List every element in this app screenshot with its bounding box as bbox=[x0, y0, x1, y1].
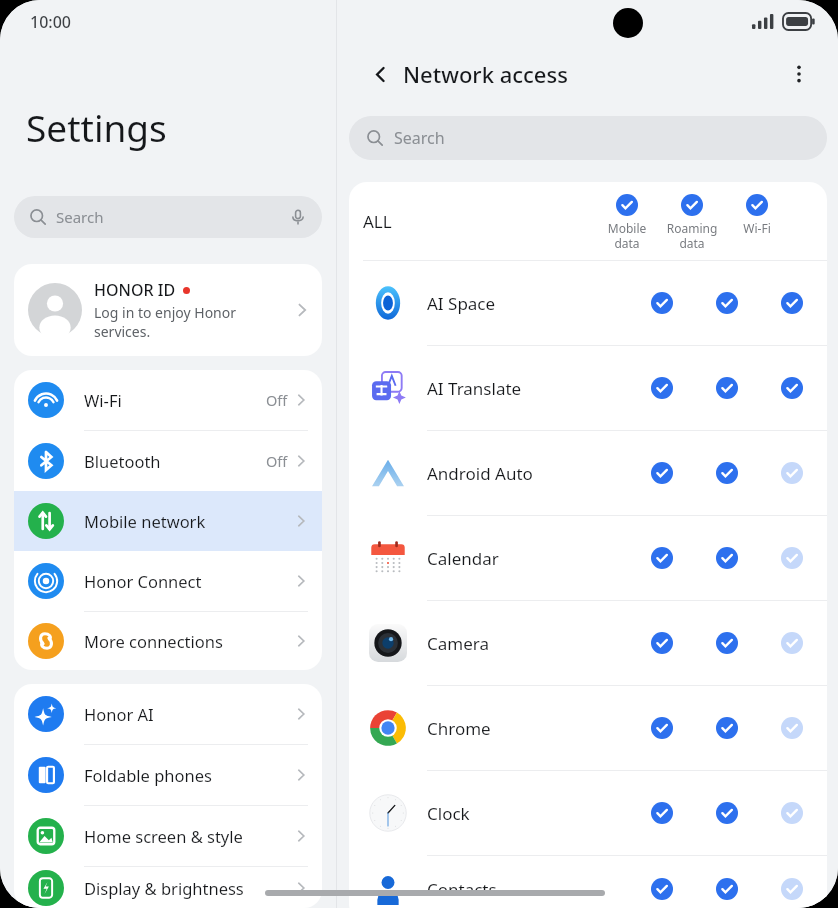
staticText: Settings bbox=[26, 102, 167, 152]
button[interactable]: Enabled bbox=[716, 292, 738, 314]
button[interactable]: Wi-Fi bbox=[746, 194, 768, 216]
button[interactable]: Enabled bbox=[651, 292, 673, 314]
button[interactable]: Calendar bbox=[349, 516, 827, 600]
staticText: HONOR ID bbox=[94, 279, 176, 301]
button[interactable]: Disabled bbox=[781, 878, 803, 900]
button[interactable]: Enabled bbox=[651, 717, 673, 739]
button[interactable]: Enabled bbox=[651, 377, 673, 399]
staticText: AI Space bbox=[427, 292, 496, 315]
staticText: More connections bbox=[84, 630, 223, 652]
button[interactable]: Roaming data bbox=[681, 194, 703, 216]
button[interactable]: Bluetooth bbox=[14, 431, 322, 491]
button[interactable]: Disabled bbox=[781, 632, 803, 654]
button[interactable]: Search bbox=[349, 116, 827, 160]
button[interactable]: AI Translate bbox=[349, 346, 827, 430]
staticText: Honor Connect bbox=[84, 570, 202, 592]
staticText: Contacts bbox=[427, 878, 497, 901]
button[interactable]: Back bbox=[363, 57, 397, 91]
button[interactable]: Enabled bbox=[651, 462, 673, 484]
button[interactable]: Enabled bbox=[716, 878, 738, 900]
button[interactable]: Mobile network bbox=[14, 491, 322, 551]
button[interactable]: Enabled bbox=[716, 802, 738, 824]
button[interactable]: Chrome bbox=[349, 686, 827, 770]
staticText: Log in to enjoy Honor services. bbox=[94, 303, 294, 341]
staticText: Search bbox=[394, 127, 445, 149]
staticText: Home screen & style bbox=[84, 825, 243, 847]
staticText: Clock bbox=[427, 802, 470, 825]
staticText: Honor AI bbox=[84, 703, 154, 725]
staticText: ALL bbox=[363, 210, 392, 233]
button[interactable]: HONOR ID bbox=[14, 264, 322, 356]
staticText: Off bbox=[266, 451, 288, 471]
button[interactable]: Enabled bbox=[716, 462, 738, 484]
button[interactable]: Enabled bbox=[651, 878, 673, 900]
button[interactable]: Enabled bbox=[781, 292, 803, 314]
staticText: Mobile data bbox=[596, 220, 658, 251]
button[interactable]: AI Space bbox=[349, 261, 827, 345]
button[interactable]: Disabled bbox=[781, 802, 803, 824]
button[interactable]: Contacts bbox=[349, 856, 827, 908]
staticText: Search bbox=[56, 207, 104, 227]
staticText: 10:00 bbox=[30, 11, 71, 33]
button[interactable]: Home screen & style bbox=[14, 806, 322, 866]
button[interactable]: Enabled bbox=[651, 632, 673, 654]
button[interactable]: Display & brightness bbox=[14, 867, 322, 908]
button[interactable]: Disabled bbox=[781, 717, 803, 739]
staticText: Android Auto bbox=[427, 462, 533, 485]
button[interactable]: Disabled bbox=[781, 547, 803, 569]
button[interactable]: Enabled bbox=[716, 377, 738, 399]
staticText: Calendar bbox=[427, 547, 499, 570]
staticText: Wi-Fi bbox=[743, 220, 771, 236]
button[interactable]: Foldable phones bbox=[14, 745, 322, 805]
button[interactable]: Mobile data bbox=[616, 194, 638, 216]
staticText: Bluetooth bbox=[84, 450, 161, 472]
staticText: Display & brightness bbox=[84, 877, 244, 899]
staticText: Chrome bbox=[427, 717, 491, 740]
button[interactable]: Enabled bbox=[716, 717, 738, 739]
staticText: Network access bbox=[403, 59, 568, 89]
staticText: Foldable phones bbox=[84, 764, 212, 786]
button[interactable]: Enabled bbox=[716, 632, 738, 654]
button[interactable]: Camera bbox=[349, 601, 827, 685]
button[interactable]: More options bbox=[782, 57, 816, 91]
button[interactable]: Honor AI bbox=[14, 684, 322, 744]
button[interactable]: Disabled bbox=[781, 462, 803, 484]
staticText: Mobile network bbox=[84, 510, 206, 532]
button[interactable]: Honor Connect bbox=[14, 551, 322, 611]
staticText: AI Translate bbox=[427, 377, 522, 400]
staticText: Roaming data bbox=[661, 220, 723, 251]
button[interactable]: Enabled bbox=[651, 547, 673, 569]
staticText: Off bbox=[266, 390, 288, 410]
button[interactable]: Enabled bbox=[781, 377, 803, 399]
staticText: Camera bbox=[427, 632, 489, 655]
button[interactable]: Clock bbox=[349, 771, 827, 855]
staticText: Wi-Fi bbox=[84, 389, 122, 411]
button[interactable]: Enabled bbox=[651, 802, 673, 824]
button[interactable]: Android Auto bbox=[349, 431, 827, 515]
button[interactable]: Search bbox=[14, 196, 322, 238]
button[interactable]: Wi-Fi bbox=[14, 370, 322, 430]
button[interactable]: More connections bbox=[14, 612, 322, 670]
button[interactable]: Enabled bbox=[716, 547, 738, 569]
